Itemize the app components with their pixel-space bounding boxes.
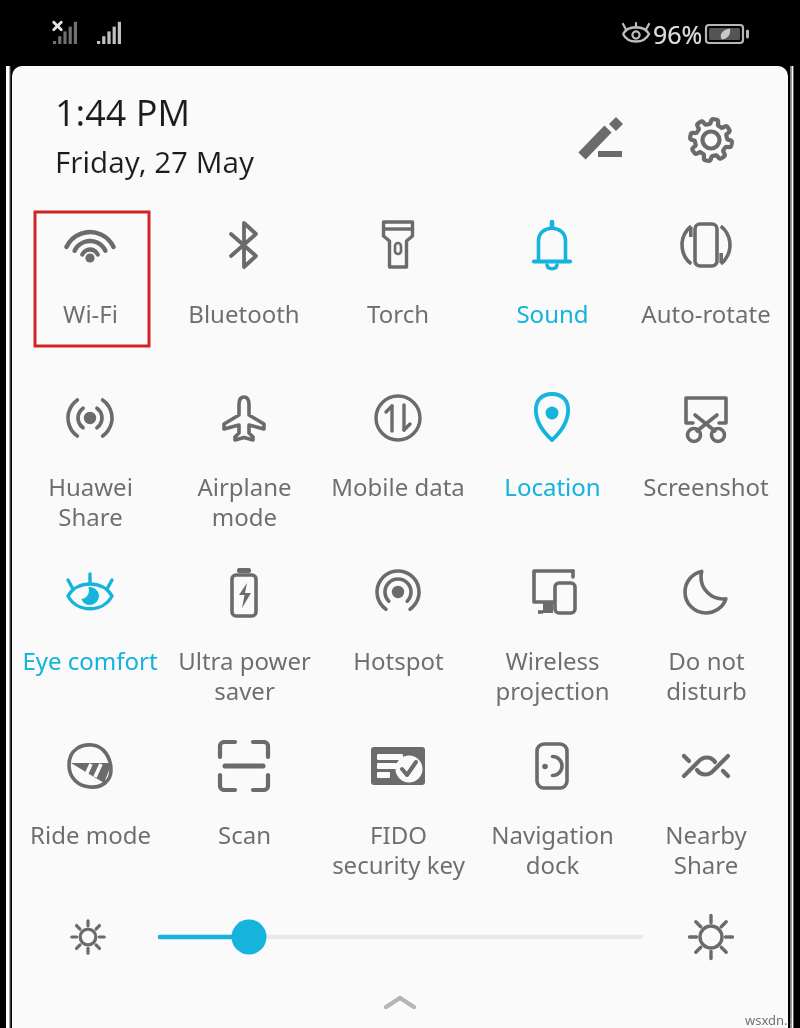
staticText: 1:44 PM — [55, 88, 191, 137]
button[interactable]: Location — [475, 378, 629, 550]
button[interactable]: High brightness — [687, 913, 735, 961]
staticText: wsxdn.com — [745, 1011, 800, 1028]
staticText: Location — [504, 470, 601, 503]
staticText: Huawei Share — [48, 470, 133, 533]
button[interactable]: Screenshot — [629, 378, 783, 550]
staticText: Ultra power saver — [178, 644, 311, 707]
staticText: Friday, 27 May — [55, 141, 255, 181]
button[interactable]: FIDO security key — [321, 726, 475, 898]
staticText: Torch — [367, 297, 429, 330]
button[interactable]: Auto-rotate — [629, 205, 783, 377]
button[interactable]: Eye comfort — [13, 552, 167, 724]
button[interactable]: Huawei Share — [13, 378, 167, 550]
staticText: Wireless projection — [495, 644, 610, 707]
button[interactable]: Ultra power saver — [167, 552, 321, 724]
button[interactable]: Collapse — [372, 982, 428, 1028]
staticText: Wi-Fi — [63, 297, 118, 330]
staticText: Navigation dock — [491, 818, 614, 881]
button[interactable]: Sound — [475, 205, 629, 377]
button[interactable]: Low brightness — [64, 913, 112, 961]
button[interactable]: Bluetooth — [167, 205, 321, 377]
button[interactable]: 1:44 PM — [55, 88, 255, 181]
button[interactable]: Scan — [167, 726, 321, 898]
staticText: Airplane mode — [197, 470, 292, 533]
button[interactable]: Do not disturb — [629, 552, 783, 724]
button[interactable]: Wireless projection — [475, 552, 629, 724]
staticText: Bluetooth — [188, 297, 300, 330]
staticText: Mobile data — [331, 470, 465, 503]
staticText: Do not disturb — [666, 644, 747, 707]
button[interactable]: Ride mode — [13, 726, 167, 898]
button[interactable]: Brightness slider — [155, 917, 650, 957]
staticText: Nearby Share — [665, 818, 747, 881]
button[interactable]: Settings — [676, 105, 746, 175]
staticText: Auto-rotate — [641, 297, 771, 330]
button[interactable]: Airplane mode — [167, 378, 321, 550]
button[interactable]: Hotspot — [321, 552, 475, 724]
staticText: Ride mode — [30, 818, 151, 851]
staticText: Screenshot — [643, 470, 769, 503]
button[interactable]: Mobile data — [321, 378, 475, 550]
staticText: FIDO security key — [332, 818, 465, 881]
staticText: Sound — [516, 297, 589, 330]
button[interactable]: Torch — [321, 205, 475, 377]
staticText: Eye comfort — [22, 644, 158, 677]
button[interactable]: Navigation dock — [475, 726, 629, 898]
button[interactable]: Edit — [570, 105, 640, 175]
staticText: Hotspot — [353, 644, 444, 677]
button[interactable]: Nearby Share — [629, 726, 783, 898]
staticText: Scan — [218, 818, 271, 851]
staticText: 96% — [653, 17, 703, 51]
button[interactable]: Wi-Fi — [13, 205, 167, 377]
